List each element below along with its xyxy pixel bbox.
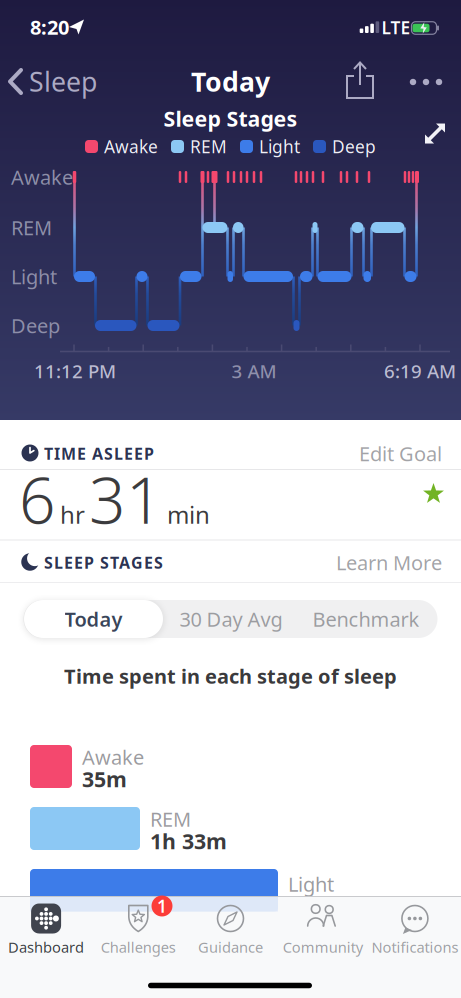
staticText: Awake [104, 135, 158, 158]
staticText: 6:19 AM [384, 359, 456, 383]
staticText: min [167, 499, 210, 530]
staticText: Today [64, 606, 122, 632]
button[interactable]: 30 Day Avg [166, 600, 296, 638]
staticText: 30 Day Avg [179, 606, 282, 632]
staticText: 1h 33m [150, 827, 227, 855]
button[interactable]: Dashboard [0, 896, 92, 956]
staticText: REM [150, 806, 191, 832]
button[interactable]: Today [24, 600, 163, 638]
staticText: Awake [82, 744, 144, 770]
button[interactable]: Benchmark [301, 600, 431, 638]
staticText: Challenges [101, 937, 176, 957]
staticText: Today [191, 64, 270, 99]
staticText: Edit Goal [359, 440, 442, 467]
staticText: 6 [19, 456, 56, 541]
button[interactable] [408, 77, 444, 87]
staticText: REM [11, 214, 52, 241]
staticText: hr [60, 499, 85, 530]
staticText: REM [190, 135, 227, 158]
button[interactable]: 1 [92, 896, 184, 956]
staticText: Guidance [198, 937, 263, 957]
button[interactable]: Sleep [3, 66, 143, 97]
staticText: Dashboard [8, 937, 84, 957]
staticText: Light [11, 263, 57, 290]
staticText: Learn More [336, 549, 442, 576]
staticText: Notifications [371, 937, 458, 957]
button[interactable]: Edit Goal [332, 440, 442, 467]
staticText: Time spent in each stage of sleep [64, 663, 397, 689]
button[interactable]: Guidance [184, 896, 276, 956]
staticText: Community [283, 937, 363, 957]
button[interactable]: Community [277, 896, 369, 956]
staticText: 11:12 PM [34, 359, 116, 383]
staticText: Deep [332, 135, 376, 158]
button[interactable] [423, 122, 446, 145]
staticText: TIME ASLEEP [44, 443, 154, 464]
staticText: Benchmark [312, 606, 419, 632]
staticText: 3 AM [231, 359, 276, 383]
staticText: 1 [157, 894, 167, 917]
staticText: Sleep Stages [163, 104, 297, 133]
staticText: 31 [89, 456, 163, 541]
staticText: 8:20 [30, 14, 69, 40]
staticText: SLEEP STAGES [44, 552, 163, 573]
staticText: Light [288, 871, 334, 897]
button[interactable]: Notifications [369, 896, 461, 956]
staticText: Deep [11, 312, 60, 339]
staticText: Sleep [29, 64, 97, 99]
staticText: LTE [381, 16, 410, 39]
staticText: Light [259, 135, 300, 158]
button[interactable] [346, 61, 374, 99]
staticText: Awake [11, 164, 73, 190]
button[interactable]: Learn More [312, 549, 442, 576]
staticText: 35m [82, 765, 127, 793]
